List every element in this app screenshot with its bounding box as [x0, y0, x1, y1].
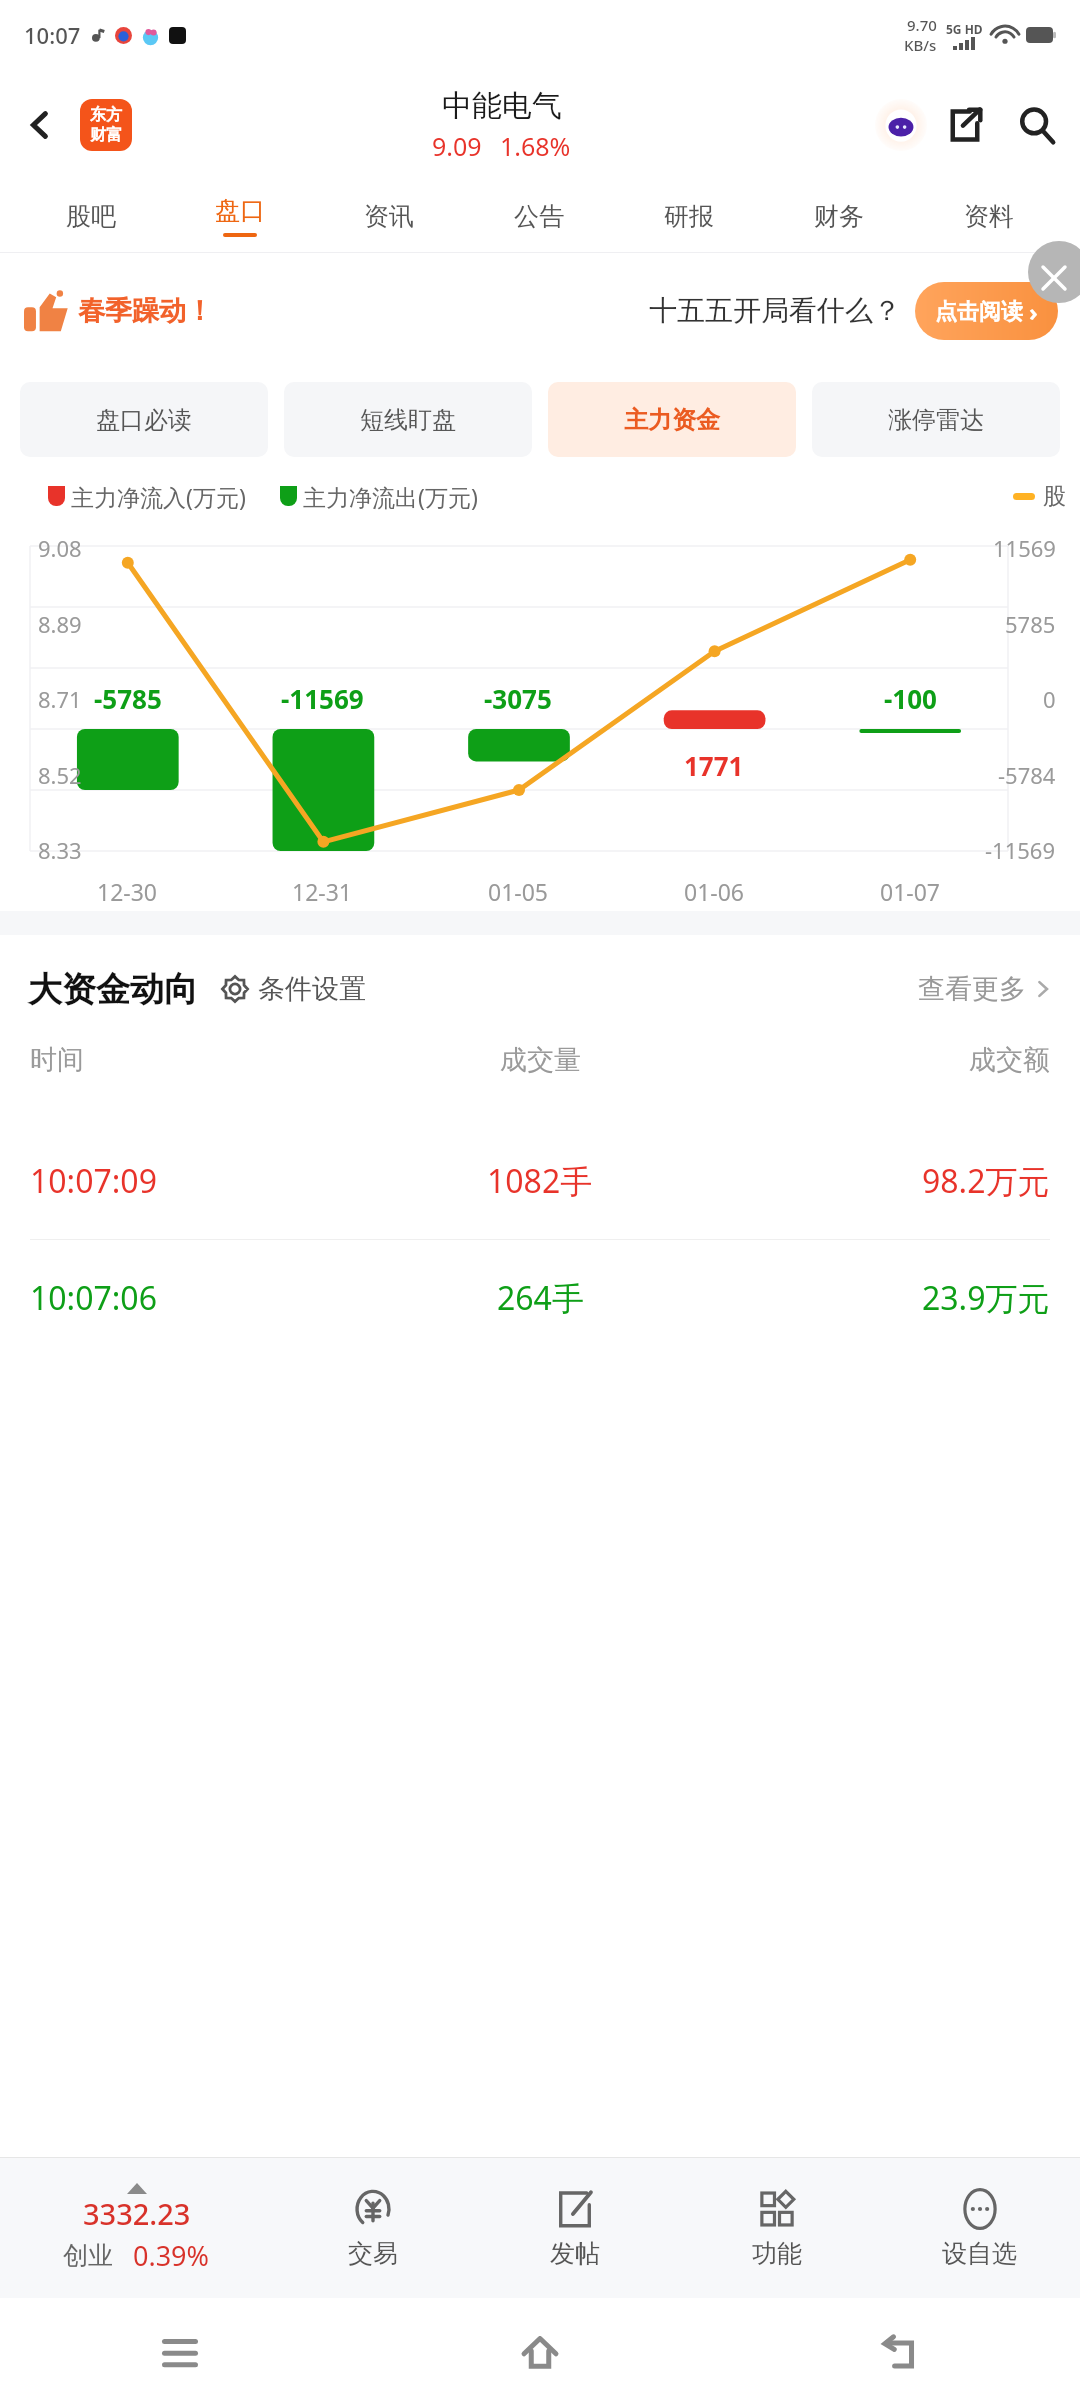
staticText: 主力净流入(万元)	[71, 481, 246, 512]
button[interactable]: 短线盯盘	[284, 382, 532, 457]
staticText: 创业	[63, 2240, 113, 2271]
staticText: 1.68%	[500, 129, 571, 163]
staticText: -5784	[998, 760, 1056, 790]
button[interactable]: 研报	[614, 180, 764, 252]
staticText: 10:07:09	[30, 1159, 157, 1203]
staticText: 01-07	[880, 876, 941, 907]
staticText: 3332.23	[83, 2194, 191, 2233]
button[interactable]: 交易	[272, 2158, 474, 2298]
staticText: 8.52	[38, 760, 82, 790]
staticText: -5785	[94, 681, 162, 716]
staticText: 东方	[90, 105, 122, 125]
staticText: 发帖	[550, 2238, 600, 2269]
button[interactable]: 主力资金	[548, 382, 796, 457]
button[interactable]: 设自选	[878, 2158, 1080, 2298]
button[interactable]: Home	[510, 2323, 570, 2383]
staticText: KB/s	[904, 35, 937, 55]
staticText: 设自选	[942, 2238, 1017, 2269]
staticText: 264手	[497, 1276, 584, 1320]
staticText: 12-30	[97, 876, 158, 907]
staticText: 十五五开局看什么？	[649, 293, 901, 328]
staticText: 0	[1043, 684, 1056, 714]
staticText: 主力资金	[624, 405, 720, 435]
button[interactable]: Search	[1000, 88, 1074, 162]
staticText: 5G HD	[946, 21, 983, 37]
staticText: 中能电气	[442, 87, 562, 125]
staticText: 23.9万元	[922, 1276, 1050, 1320]
staticText: -11569	[281, 681, 364, 716]
staticText: 8.71	[38, 684, 82, 714]
staticText: 成交量	[500, 1043, 581, 1077]
staticText: 8.33	[38, 835, 82, 865]
staticText: 主力净流出(万元)	[303, 481, 478, 512]
staticText: 10:07:06	[30, 1276, 157, 1320]
staticText: 11569	[993, 533, 1056, 563]
staticText: 1771	[684, 748, 744, 783]
button[interactable]: Back	[870, 2323, 930, 2383]
button[interactable]: 公告	[464, 180, 614, 252]
button[interactable]: 盘口必读	[20, 382, 268, 457]
button[interactable]: 查看更多	[918, 972, 1052, 1006]
staticText: 资料	[964, 201, 1014, 232]
button[interactable]: Share	[930, 90, 1000, 160]
staticText: 98.2万元	[922, 1159, 1050, 1203]
staticText: 条件设置	[258, 972, 366, 1006]
staticText: 盘口	[215, 195, 265, 226]
button[interactable]: Recents	[150, 2323, 210, 2383]
staticText: 9.70	[907, 15, 937, 35]
button[interactable]: Close ad	[1028, 241, 1080, 303]
staticText: ›	[1029, 295, 1038, 328]
button[interactable]: 盘口	[165, 180, 314, 252]
staticText: 10:07	[24, 20, 81, 50]
staticText: -3075	[484, 681, 552, 716]
button[interactable]: 条件设置	[220, 972, 366, 1006]
button[interactable]: 资讯	[314, 180, 464, 252]
staticText: 01-05	[488, 876, 549, 907]
staticText: 交易	[348, 2238, 398, 2269]
staticText: 时间	[30, 1043, 84, 1077]
staticText: 短线盯盘	[360, 405, 456, 435]
button[interactable]: 3332.23	[0, 2158, 272, 2298]
button[interactable]: 涨停雷达	[812, 382, 1060, 457]
staticText: 点击阅读	[935, 298, 1023, 326]
staticText: 8.89	[38, 609, 82, 639]
staticText: 股吧	[66, 201, 116, 232]
staticText: 盘口必读	[96, 405, 192, 435]
staticText: 01-06	[684, 876, 745, 907]
staticText: 1082手	[487, 1159, 593, 1203]
staticText: 12-31	[292, 876, 353, 907]
staticText: 成交额	[969, 1043, 1050, 1077]
button[interactable]: 发帖	[474, 2158, 676, 2298]
staticText: 大资金动向	[28, 968, 198, 1011]
button[interactable]: 功能	[676, 2158, 878, 2298]
staticText: 财务	[814, 201, 864, 232]
staticText: 资讯	[364, 201, 414, 232]
staticText: 研报	[664, 201, 714, 232]
staticText: -100	[884, 681, 937, 716]
staticText: 涨停雷达	[888, 405, 984, 435]
staticText: 春季躁动！	[78, 294, 213, 328]
button[interactable]: 股吧	[16, 180, 165, 252]
staticText: 功能	[752, 2238, 802, 2269]
staticText: -11569	[985, 835, 1056, 865]
button[interactable]: East Money	[80, 99, 132, 151]
staticText: 9.09	[432, 129, 482, 163]
staticText: 查看更多	[918, 972, 1026, 1006]
button[interactable]: Back	[0, 70, 80, 180]
button[interactable]: AI assistant	[872, 96, 930, 154]
staticText: 财富	[90, 125, 122, 145]
staticText: 股	[1043, 482, 1066, 511]
staticText: 9.08	[38, 533, 82, 563]
button[interactable]: 资料	[914, 180, 1064, 252]
staticText: 5785	[1005, 609, 1056, 639]
button[interactable]: 点击阅读	[915, 282, 1058, 340]
button[interactable]: 财务	[764, 180, 914, 252]
staticText: 0.39%	[133, 2237, 210, 2274]
button[interactable]: 10:07:09	[0, 1123, 1080, 1239]
button[interactable]: 10:07:06	[0, 1240, 1080, 1356]
staticText: 公告	[514, 201, 564, 232]
